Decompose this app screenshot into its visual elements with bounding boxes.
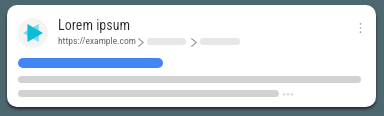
- button[interactable]: App icon: [7, 5, 376, 107]
- staticText: https://example.com: [58, 35, 136, 46]
- button[interactable]: Breadcrumb: [147, 38, 186, 45]
- other: App icon: [18, 18, 48, 48]
- staticText: Lorem ipsum: [58, 17, 130, 33]
- button[interactable]: Breadcrumb: [200, 38, 240, 45]
- button[interactable]: More options: [348, 15, 372, 41]
